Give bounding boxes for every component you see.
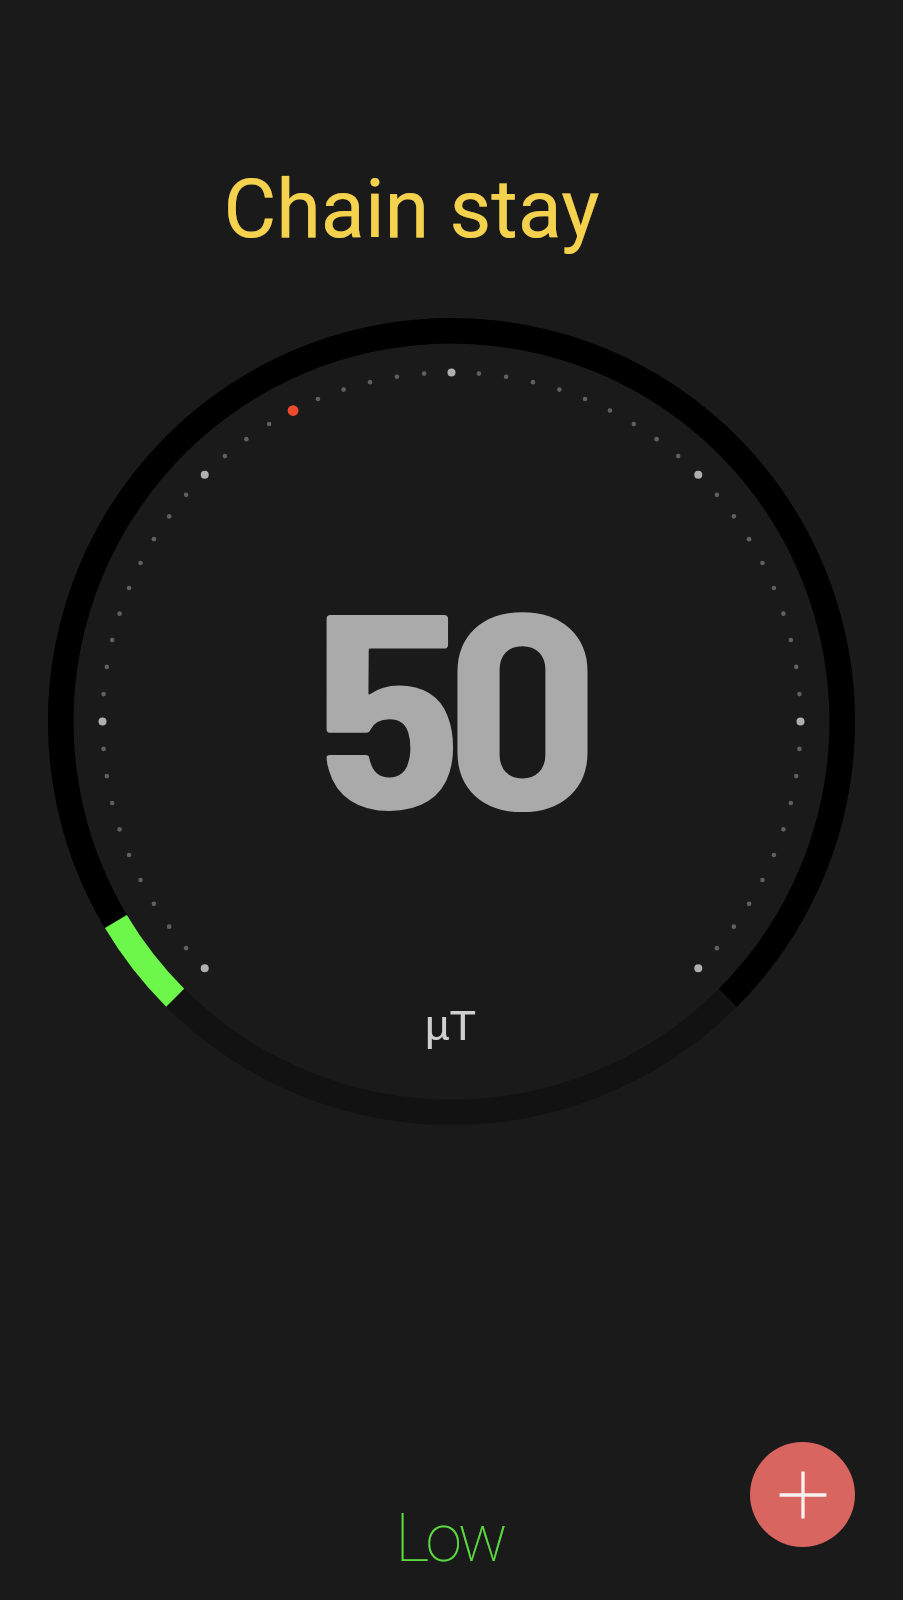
staticText: µT [0,1001,902,1049]
button[interactable]: Add reading [750,1442,855,1547]
staticText: Low [0,1500,901,1577]
staticText: 50 [0,532,903,864]
staticText: Chain stay [0,162,863,257]
